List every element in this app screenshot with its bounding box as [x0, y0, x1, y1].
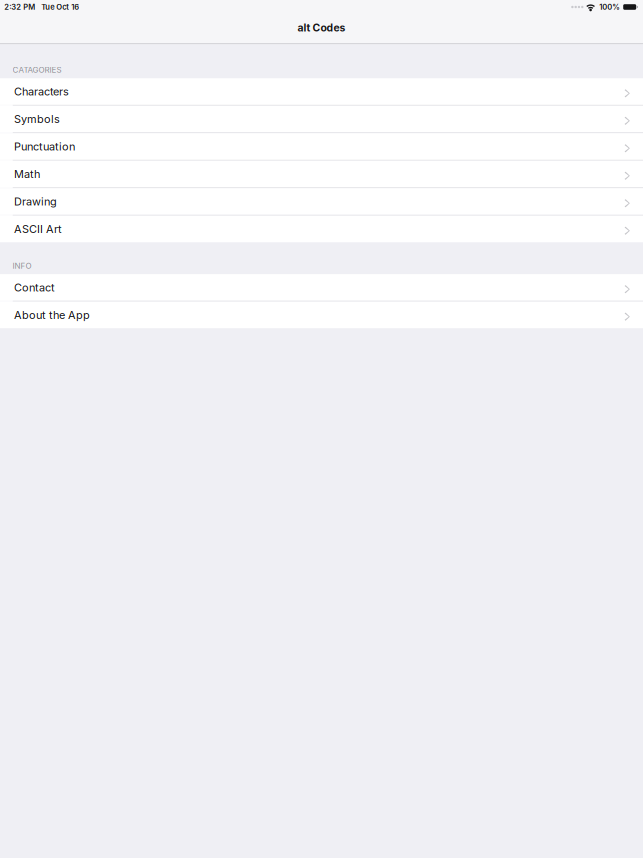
staticText: Tue Oct 16: [41, 2, 79, 12]
staticText: Punctuation: [14, 140, 75, 153]
staticText: CATAGORIES: [12, 65, 61, 75]
button[interactable]: Punctuation: [0, 133, 643, 160]
button[interactable]: Drawing: [0, 188, 643, 215]
button[interactable]: Symbols: [0, 106, 643, 132]
staticText: Drawing: [14, 195, 57, 208]
staticText: 2:32 PM: [4, 2, 35, 12]
staticText: Math: [14, 167, 40, 181]
button[interactable]: Characters: [0, 78, 643, 105]
button[interactable]: About the App: [0, 302, 643, 328]
staticText: Symbols: [14, 112, 60, 126]
staticText: INFO: [12, 261, 31, 271]
button[interactable]: Math: [0, 161, 643, 187]
staticText: ASCII Art: [14, 222, 62, 236]
staticText: About the App: [14, 308, 90, 321]
button[interactable]: ASCII Art: [0, 216, 643, 242]
staticText: alt Codes: [297, 21, 345, 34]
staticText: Characters: [14, 85, 69, 98]
button[interactable]: Contact: [0, 274, 643, 301]
staticText: 100%: [599, 2, 620, 12]
staticText: Contact: [14, 281, 55, 294]
